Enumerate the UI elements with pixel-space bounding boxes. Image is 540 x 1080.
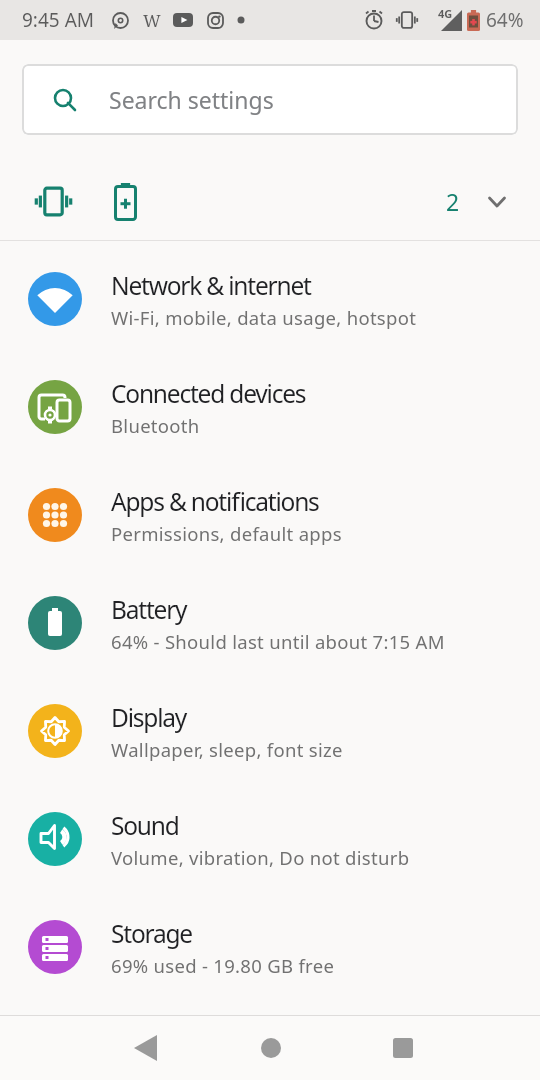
staticText: 2 — [446, 186, 460, 217]
staticText: 4G — [438, 6, 453, 21]
staticText: Sound — [111, 809, 179, 842]
button[interactable] — [247, 1024, 295, 1072]
button[interactable] — [121, 1024, 169, 1072]
staticText: Connected devices — [111, 377, 306, 410]
staticText: 64% — [486, 7, 524, 33]
button[interactable] — [379, 1024, 427, 1072]
staticText: Wallpaper, sleep, font size — [111, 737, 343, 762]
staticText: Bluetooth — [111, 413, 200, 438]
button[interactable]: Storage — [0, 893, 540, 1001]
staticText: W — [143, 9, 161, 32]
button[interactable]: Search settings — [22, 64, 518, 135]
button[interactable]: Display — [0, 677, 540, 785]
button[interactable]: 2 — [0, 135, 540, 240]
staticText: Storage — [111, 917, 192, 950]
staticText: Network & internet — [111, 269, 311, 302]
staticText: Battery — [111, 593, 187, 626]
button[interactable]: Sound — [0, 785, 540, 893]
button[interactable]: Network & internet — [0, 245, 540, 353]
staticText: Search settings — [109, 84, 274, 115]
staticText: 69% used - 19.80 GB free — [111, 953, 335, 978]
button[interactable]: Connected devices — [0, 353, 540, 461]
button[interactable]: Apps & notifications — [0, 461, 540, 569]
staticText: 9:45 AM — [22, 7, 95, 33]
staticText: Volume, vibration, Do not disturb — [111, 845, 410, 870]
button[interactable]: Battery — [0, 569, 540, 677]
staticText: Wi-Fi, mobile, data usage, hotspot — [111, 305, 417, 330]
staticText: Permissions, default apps — [111, 521, 342, 546]
staticText: Display — [111, 701, 187, 734]
staticText: Apps & notifications — [111, 485, 319, 518]
staticText: 64% - Should last until about 7:15 AM — [111, 629, 445, 654]
